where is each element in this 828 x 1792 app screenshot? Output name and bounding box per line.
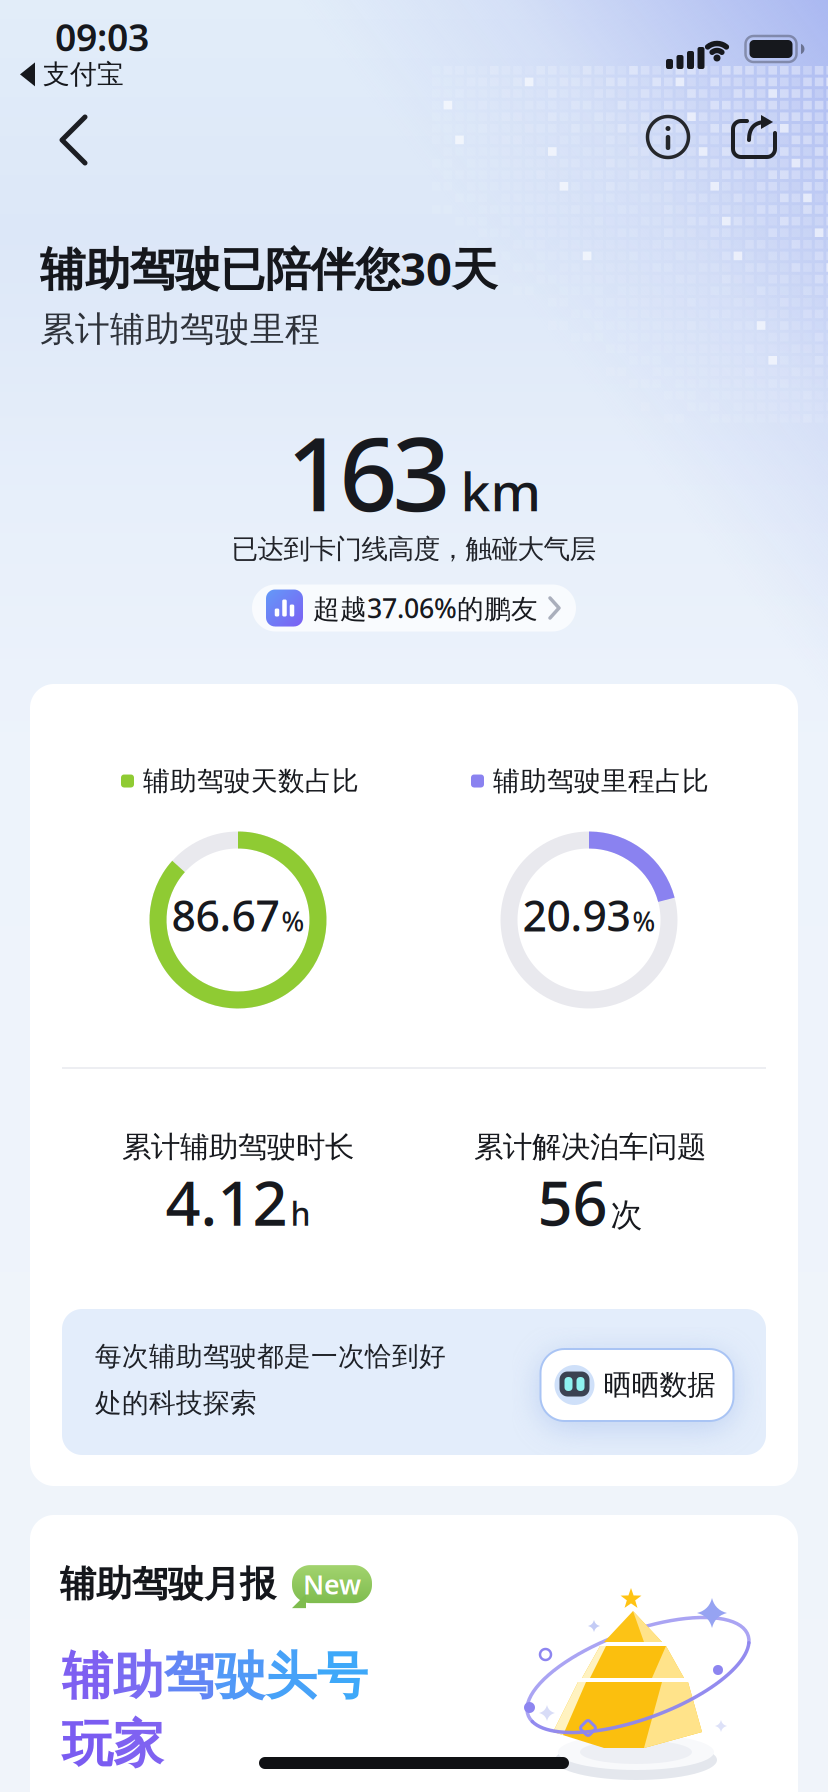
staticText: 晒晒数据 xyxy=(603,1368,715,1402)
button[interactable]: 晒晒数据 xyxy=(540,1349,733,1421)
staticText: 辅助驾驶月报 xyxy=(60,1562,276,1606)
staticText: 09:03 xyxy=(55,12,149,62)
staticText: 玩 xyxy=(62,1713,113,1775)
staticText: 处的科技探索 xyxy=(95,1387,257,1420)
staticText: % xyxy=(281,903,304,939)
staticText: 163 xyxy=(286,405,450,539)
staticText: 超越37.06%的鹏友 xyxy=(313,590,538,626)
staticText: 累计辅助驾驶时长 xyxy=(122,1129,354,1165)
staticText: 支付宝 xyxy=(43,58,124,91)
staticText: 已达到卡门线高度，触碰大气层 xyxy=(231,533,596,565)
staticText: 头 xyxy=(266,1645,317,1707)
staticText: 辅 xyxy=(62,1645,113,1707)
staticText: 辅助驾驶已陪伴您30天 xyxy=(40,238,497,298)
staticText: New xyxy=(303,1566,361,1602)
staticText: 辅助驾驶里程占比 xyxy=(493,765,709,797)
button[interactable]: Info xyxy=(646,115,690,159)
staticText: 次 xyxy=(610,1195,642,1235)
button[interactable]: Back xyxy=(39,105,109,175)
staticText: 56 xyxy=(537,1161,607,1243)
staticText: km xyxy=(460,455,541,526)
staticText: 每次辅助驾驶都是一次恰到好 xyxy=(95,1340,446,1373)
button[interactable]: 辅助驾驶月报 xyxy=(30,1515,798,1792)
button[interactable]: Share xyxy=(733,115,777,159)
staticText: % xyxy=(632,903,655,939)
staticText: 86.67 xyxy=(171,887,279,943)
staticText: 累计辅助驾驶里程 xyxy=(40,308,320,351)
staticText: 4.12 xyxy=(165,1161,287,1243)
staticText: 辅助驾驶天数占比 xyxy=(143,765,359,797)
staticText: 驾 xyxy=(164,1645,215,1707)
staticText: 累计解决泊车问题 xyxy=(474,1129,706,1165)
staticText: h xyxy=(290,1192,310,1235)
staticText: 助 xyxy=(113,1645,164,1707)
staticText: 驶 xyxy=(215,1645,266,1707)
staticText: 家 xyxy=(113,1713,164,1775)
staticText: 20.93 xyxy=(522,887,630,943)
button[interactable]: 超越37.06%的鹏友 xyxy=(252,584,576,631)
staticText: 号 xyxy=(317,1645,368,1707)
